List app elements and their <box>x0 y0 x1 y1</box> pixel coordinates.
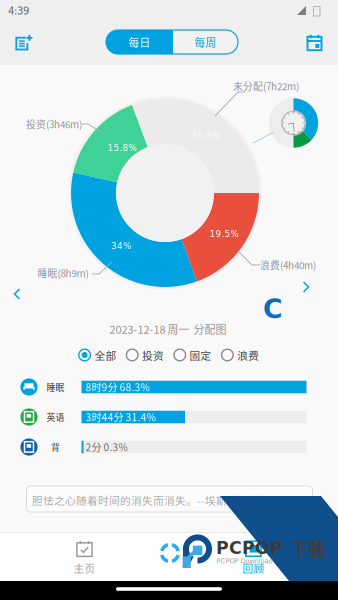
staticText: 背 <box>51 441 60 453</box>
button[interactable]: 固定 <box>174 345 212 365</box>
staticText: 8时9分 68.3% <box>85 380 149 394</box>
staticText: 投资(3h46m) <box>26 117 82 131</box>
staticText: 2分 0.3% <box>85 440 127 454</box>
staticText: 投资 <box>142 347 164 363</box>
staticText: 英语 <box>46 411 64 423</box>
staticText: 30.8% <box>191 131 220 141</box>
staticText: PCPOP <box>216 538 283 558</box>
button[interactable]: 浪费 <box>222 345 259 365</box>
staticText: 主页 <box>73 560 95 575</box>
staticText: 回顾 <box>242 560 264 576</box>
staticText: C <box>263 293 283 324</box>
staticText: 3时44分 31.4% <box>85 410 155 424</box>
button[interactable]: 回顾 <box>0 0 338 600</box>
staticText: 每日 <box>128 34 150 50</box>
button[interactable]: 投资 <box>126 345 164 365</box>
staticText: 34% <box>111 241 131 251</box>
staticText: 睡眠 <box>46 381 64 393</box>
staticText: 15.8% <box>107 143 136 153</box>
staticText: 19.5% <box>209 229 238 239</box>
staticText: 4:39 <box>8 5 29 17</box>
staticText: 浪费 <box>237 347 259 363</box>
staticText: PCPOP Download <box>216 557 272 565</box>
button[interactable]: Previous day <box>0 0 338 600</box>
button[interactable]: New record <box>0 0 338 600</box>
staticText: 2023-12-18 周一 分配图 <box>109 321 226 337</box>
staticText: 每周 <box>194 34 216 50</box>
button[interactable]: Next day <box>0 0 338 600</box>
button[interactable]: Calendar <box>0 0 338 600</box>
staticText: 固定 <box>190 347 212 363</box>
staticText: 胆怯之心随着时间的消失而消失。--埃斯库罗斯 <box>32 492 260 508</box>
staticText: 浪费(4h40m) <box>260 258 316 272</box>
staticText: 全部 <box>94 347 116 363</box>
button[interactable]: 主页 <box>0 0 338 600</box>
button[interactable]: 每日 <box>106 30 173 54</box>
staticText: 下载 <box>291 535 325 561</box>
button[interactable]: 全部 <box>79 345 116 365</box>
staticText: 未分配(7h22m) <box>233 79 299 93</box>
button[interactable]: 每周 <box>173 30 238 54</box>
staticText: 睡眠(8h9m) <box>37 266 88 280</box>
